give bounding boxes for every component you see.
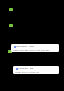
button[interactable]: Status badge	[8, 50, 12, 53]
staticText: Team sync at 3:00 PM	[15, 70, 40, 73]
staticText: New message from Alex Johnson	[13, 48, 50, 51]
button[interactable]: Calendar · 5m	[13, 66, 59, 74]
button[interactable]: Status badge	[9, 24, 13, 27]
button[interactable]: Status badge	[9, 8, 13, 11]
button[interactable]: Messages · now	[11, 44, 59, 52]
staticText: Calendar · 5m	[18, 67, 34, 70]
staticText: Messages · now	[16, 45, 34, 48]
